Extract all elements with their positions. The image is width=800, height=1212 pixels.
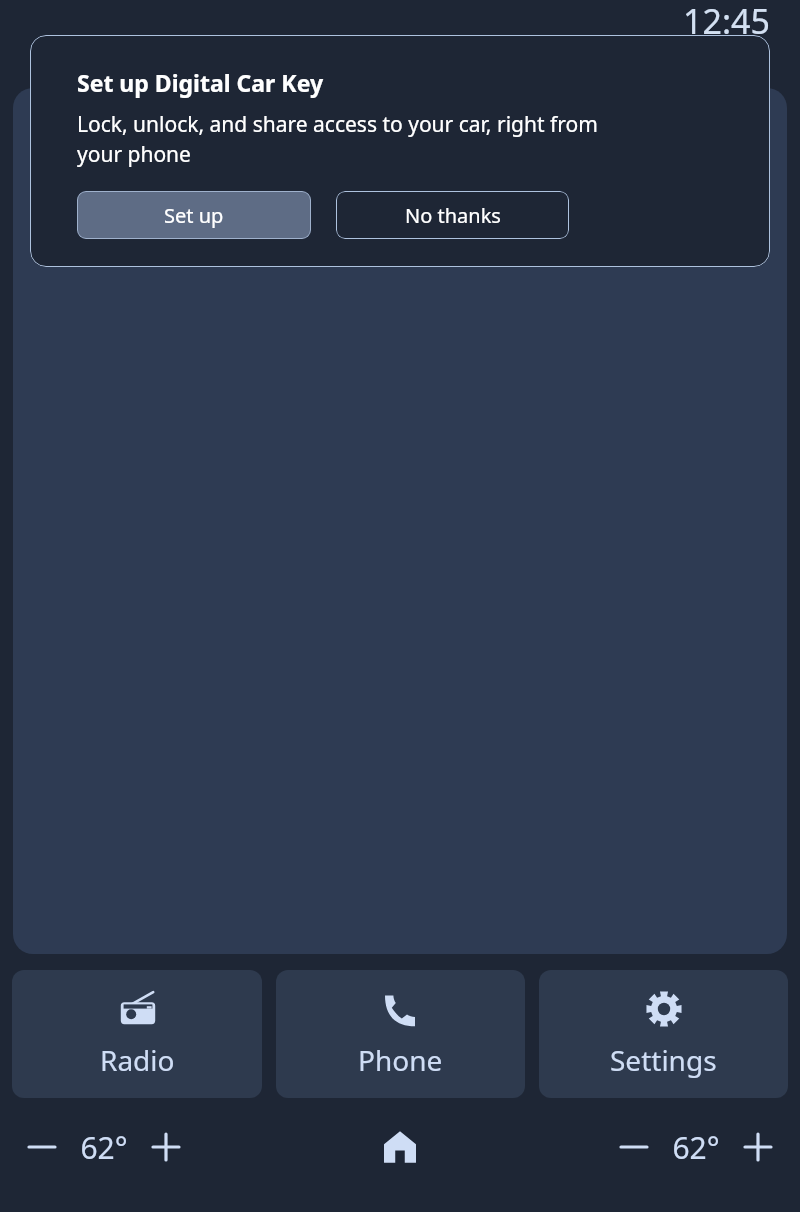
staticText: Set up Digital Car Key <box>77 67 324 98</box>
staticText: 62° <box>672 1127 720 1168</box>
button[interactable]: Decrease temperature <box>18 1123 66 1171</box>
button[interactable]: Decrease temperature <box>610 1123 658 1171</box>
staticText: 12:45 <box>683 0 770 44</box>
button[interactable]: Radio <box>12 970 262 1098</box>
button[interactable]: 62° <box>66 1123 142 1171</box>
staticText: Lock, unlock, and share access to your c… <box>77 110 647 168</box>
staticText: 62° <box>80 1127 128 1168</box>
staticText: Set up <box>164 202 224 229</box>
button[interactable]: Increase temperature <box>734 1123 782 1171</box>
button[interactable]: Settings <box>539 970 788 1098</box>
staticText: Settings <box>610 1041 717 1079</box>
button[interactable]: Increase temperature <box>142 1123 190 1171</box>
button[interactable]: No thanks <box>336 191 569 239</box>
staticText: Phone <box>358 1041 443 1079</box>
staticText: Radio <box>100 1041 175 1079</box>
button[interactable]: 62° <box>658 1123 734 1171</box>
button[interactable]: Phone <box>276 970 525 1098</box>
button[interactable]: Home <box>368 1115 432 1179</box>
staticText: No thanks <box>405 202 501 229</box>
button[interactable]: Set up <box>77 191 311 239</box>
